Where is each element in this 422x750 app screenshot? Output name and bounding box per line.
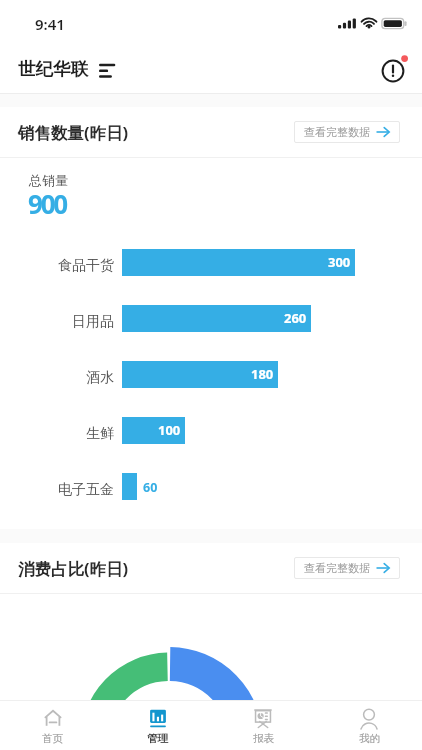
button[interactable]: 管理 (105, 701, 210, 750)
staticText: 300 (328, 253, 351, 271)
staticText: 报表 (253, 732, 274, 745)
staticText: 60 (143, 479, 158, 496)
staticText: 260 (284, 309, 307, 327)
staticText: 生鲜 (41, 425, 114, 443)
staticText: 食品干货 (41, 257, 114, 275)
staticText: 消费占比(昨日) (18, 557, 129, 580)
staticText: 9:41 (35, 14, 65, 34)
button[interactable]: 我的 (316, 701, 422, 750)
button[interactable]: 报表 (210, 701, 316, 750)
staticText: 900 (28, 186, 67, 221)
staticText: 酒水 (41, 369, 114, 387)
staticText: 180 (251, 365, 274, 383)
staticText: 销售数量(昨日) (18, 121, 129, 144)
staticText: 管理 (147, 732, 168, 745)
button[interactable]: 世纪华联 (18, 58, 116, 80)
staticText: 日用品 (41, 313, 114, 331)
staticText: 电子五金 (41, 481, 114, 499)
staticText: 总销量 (29, 172, 68, 188)
button[interactable]: 首页 (0, 701, 105, 750)
button[interactable]: 查看完整数据 (294, 121, 400, 143)
staticText: 100 (158, 421, 181, 439)
button[interactable]: Notifications (373, 51, 413, 91)
staticText: 世纪华联 (18, 58, 88, 80)
staticText: 首页 (42, 732, 63, 745)
staticText: 查看完整数据 (304, 561, 370, 575)
button[interactable]: 查看完整数据 (294, 557, 400, 579)
staticText: 我的 (359, 732, 380, 745)
staticText: 查看完整数据 (304, 125, 370, 139)
